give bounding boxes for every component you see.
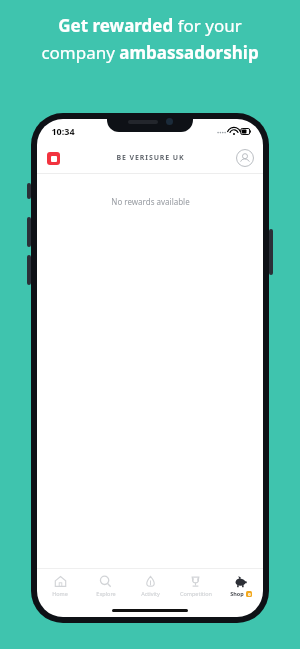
button[interactable]: Competition <box>173 569 218 603</box>
staticText: Get rewarded for your <box>58 14 242 37</box>
staticText: Explore <box>96 590 116 597</box>
button[interactable]: Explore <box>83 569 128 603</box>
button[interactable]: Brand logo <box>47 152 60 165</box>
staticText: company ambassadorship <box>41 41 259 64</box>
staticText: Shop <box>230 590 244 597</box>
staticText: Activity <box>141 590 160 597</box>
staticText: BE VERISURE UK <box>116 153 185 163</box>
button[interactable]: Home <box>37 569 83 603</box>
button[interactable]: Activity <box>128 569 173 603</box>
button[interactable]: Profile <box>236 149 254 167</box>
staticText: Competition <box>180 590 212 597</box>
staticText: Home <box>52 590 68 597</box>
button[interactable]: Shop <box>218 569 263 603</box>
staticText: No rewards available <box>111 196 190 207</box>
staticText: 0 <box>248 592 251 597</box>
staticText: 10:34 <box>51 125 75 137</box>
